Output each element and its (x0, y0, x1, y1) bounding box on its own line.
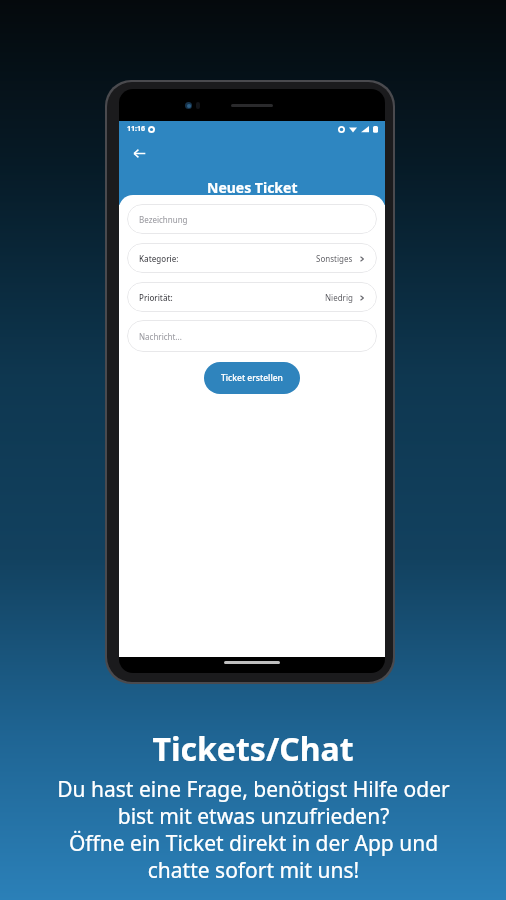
button[interactable]: Nachricht... (127, 320, 377, 352)
staticText: Priorität: (139, 292, 173, 303)
staticText: Bezeichnung (139, 214, 188, 225)
button[interactable]: Ticket erstellen (204, 362, 300, 394)
button[interactable]: Kategorie: (127, 243, 377, 273)
staticText: Nachricht... (139, 331, 182, 342)
staticText: 11:16 (127, 124, 145, 134)
staticText: Neues Ticket (207, 178, 298, 197)
staticText: Kategorie: (139, 253, 179, 264)
button[interactable]: Bezeichnung (127, 204, 377, 234)
button[interactable]: Zurück (127, 141, 151, 165)
button[interactable]: Priorität: (127, 282, 377, 312)
staticText: Niedrig (325, 292, 353, 303)
staticText: Ticket erstellen (221, 372, 283, 384)
staticText: Sonstiges (316, 253, 353, 264)
staticText: Tickets/Chat (152, 727, 354, 771)
staticText: Du hast eine Frage, benötigst Hilfe oder… (57, 775, 450, 884)
